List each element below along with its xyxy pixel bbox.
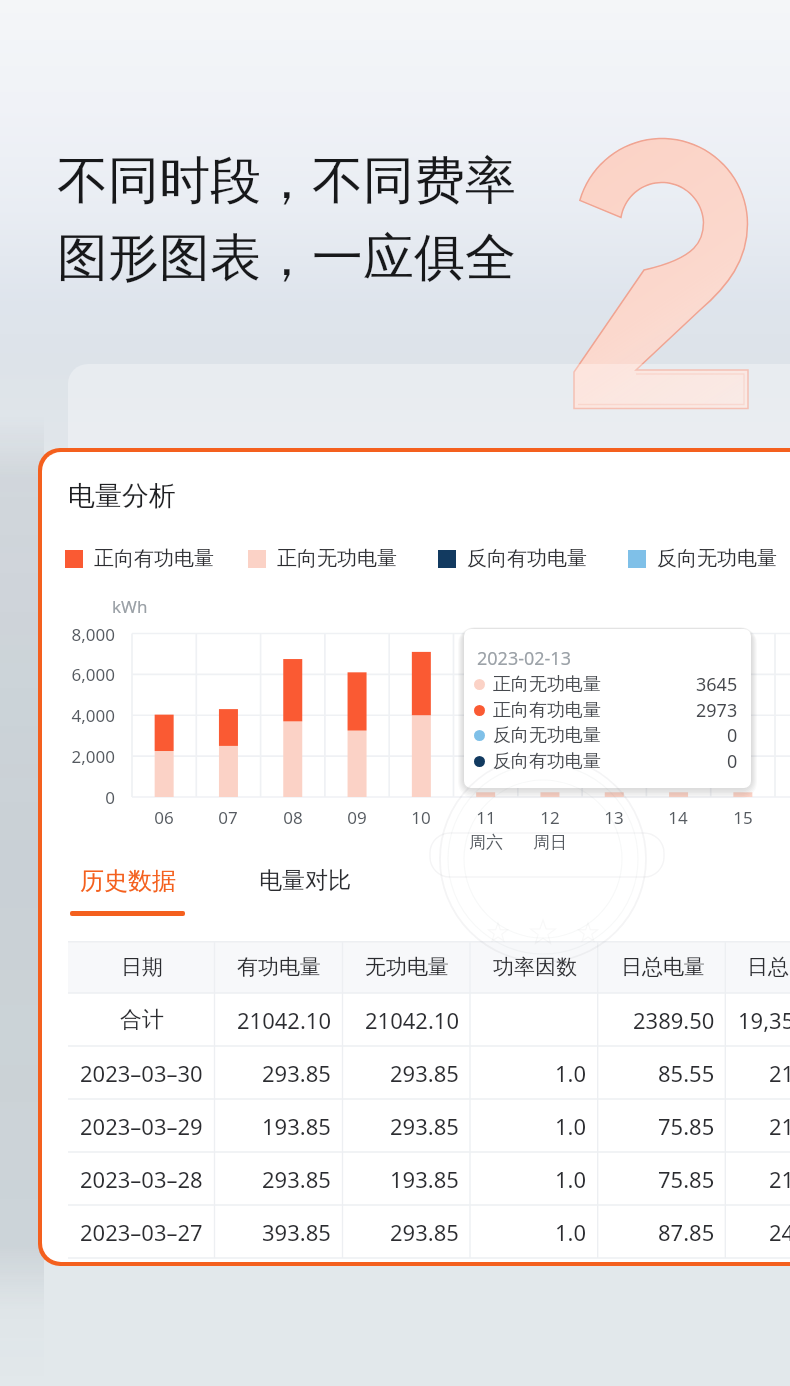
staticText: 电量对比 [259,866,351,895]
staticText: 0 [42,786,115,809]
staticText: 212.55 [769,1164,790,1194]
staticText: 75.85 [658,1111,715,1141]
staticText: 2023–03–30 [80,1058,203,1088]
staticText: 不同时段，不同费率 图形图表，一应俱全 [57,149,516,291]
staticText: 293.85 [390,1111,459,1141]
staticText: 242.55 [769,1217,790,1247]
staticText: 21042.10 [365,1005,459,1035]
button[interactable]: 正向无功电量 [248,546,397,571]
staticText: 1.0 [555,1058,587,1088]
staticText: 3645 [696,672,738,697]
button[interactable]: 正向有功电量 [65,546,214,571]
staticText: 0 [727,749,738,774]
staticText: 87.85 [658,1217,715,1247]
staticText: 212.55 [769,1111,790,1141]
staticText: 0 [727,723,738,748]
staticText: 393.85 [262,1217,331,1247]
staticText: 1.0 [555,1164,587,1194]
staticText: 正向有功电量 [493,699,601,722]
button[interactable]: 历史数据 [70,866,185,916]
staticText: 2023-02-13 [477,646,571,671]
staticText: 12 [518,806,582,829]
staticText: 反向无功电量 [657,546,777,571]
staticText: 无功电量 [365,954,449,980]
staticText: 212.55 [769,1058,790,1088]
staticText: 正向无功电量 [277,546,397,571]
staticText: 2389.50 [633,1005,715,1035]
staticText: 1.0 [555,1111,587,1141]
staticText: 2023–03–27 [80,1217,203,1247]
staticText: 4,000 [42,704,115,727]
staticText: 193.85 [390,1164,459,1194]
staticText: 反向有功电量 [493,750,601,773]
staticText: 08 [261,806,325,829]
staticText: 09 [325,806,389,829]
staticText: 13 [582,806,646,829]
button[interactable]: 合计 [68,993,790,1046]
staticText: 周日 [518,832,582,853]
button[interactable]: 反向无功电量 [628,546,777,571]
staticText: 14 [646,806,710,829]
staticText: 293.85 [262,1164,331,1194]
staticText: 日总电量 [747,954,790,980]
staticText: 日总电量 [621,954,705,980]
staticText: 反向有功电量 [467,546,587,571]
staticText: 293.85 [262,1058,331,1088]
staticText: 2023–03–29 [80,1111,203,1141]
button[interactable]: 2023–03–29 [68,1099,790,1152]
staticText: 193.85 [262,1111,331,1141]
staticText: 21042.10 [237,1005,331,1035]
staticText: 周六 [454,832,518,853]
staticText: 293.85 [390,1058,459,1088]
staticText: 75.85 [658,1164,715,1194]
staticText: 正向无功电量 [493,673,601,696]
button[interactable]: 2023–03–30 [68,1046,790,1099]
button[interactable]: 2023–03–27 [68,1205,790,1258]
staticText: 11 [454,806,518,829]
staticText: 19,350.25 [738,1005,790,1035]
staticText: 功率因数 [493,954,577,980]
button[interactable]: 电量对比 [259,866,351,916]
staticText: 电量分析 [68,479,176,513]
button[interactable]: 反向有功电量 [438,546,587,571]
staticText: 日期 [121,954,163,980]
button[interactable]: 2023–03–28 [68,1152,790,1205]
staticText: 1.0 [555,1217,587,1247]
staticText: 2973 [696,698,738,723]
staticText: kWh [112,595,148,618]
staticText: 07 [196,806,260,829]
staticText: 06 [132,806,196,829]
staticText: 15 [711,806,775,829]
staticText: 85.55 [658,1058,715,1088]
staticText: 合计 [120,1006,164,1034]
staticText: 历史数据 [80,866,176,896]
staticText: 有功电量 [237,954,321,980]
staticText: 10 [389,806,453,829]
staticText: 2023–03–28 [80,1164,203,1194]
staticText: 反向无功电量 [493,724,601,747]
staticText: 8,000 [42,623,115,646]
staticText: 正向有功电量 [94,546,214,571]
staticText: 6,000 [42,663,115,686]
staticText: 2,000 [42,745,115,768]
staticText: 293.85 [390,1217,459,1247]
